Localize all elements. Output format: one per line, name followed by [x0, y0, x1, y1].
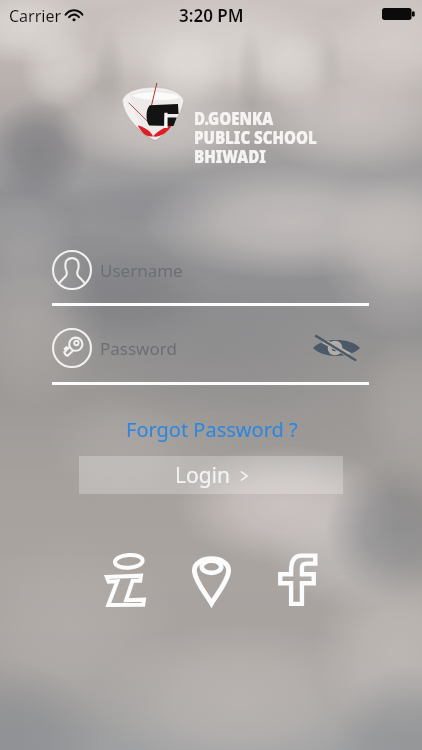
- button[interactable]: About / Information: [97, 544, 153, 614]
- staticText: Carrier: [9, 5, 62, 27]
- staticText: PUBLIC SCHOOL: [194, 125, 317, 149]
- staticText: Forgot Password ?: [126, 416, 298, 443]
- button[interactable]: Username: [52, 250, 183, 290]
- button[interactable]: Forgot Password ?: [126, 414, 298, 444]
- staticText: D.GOENKA: [194, 106, 274, 130]
- button[interactable]: Facebook: [269, 544, 325, 614]
- button[interactable]: Show password: [310, 328, 362, 368]
- staticText: Username: [100, 259, 183, 282]
- staticText: Login: [175, 461, 231, 490]
- staticText: BHIWADI: [194, 144, 266, 168]
- button[interactable]: Login: [79, 456, 343, 494]
- button[interactable]: Location: [183, 544, 239, 614]
- staticText: 3:20 PM: [179, 4, 244, 27]
- button[interactable]: Password: [52, 328, 369, 368]
- staticText: Password: [100, 337, 177, 360]
